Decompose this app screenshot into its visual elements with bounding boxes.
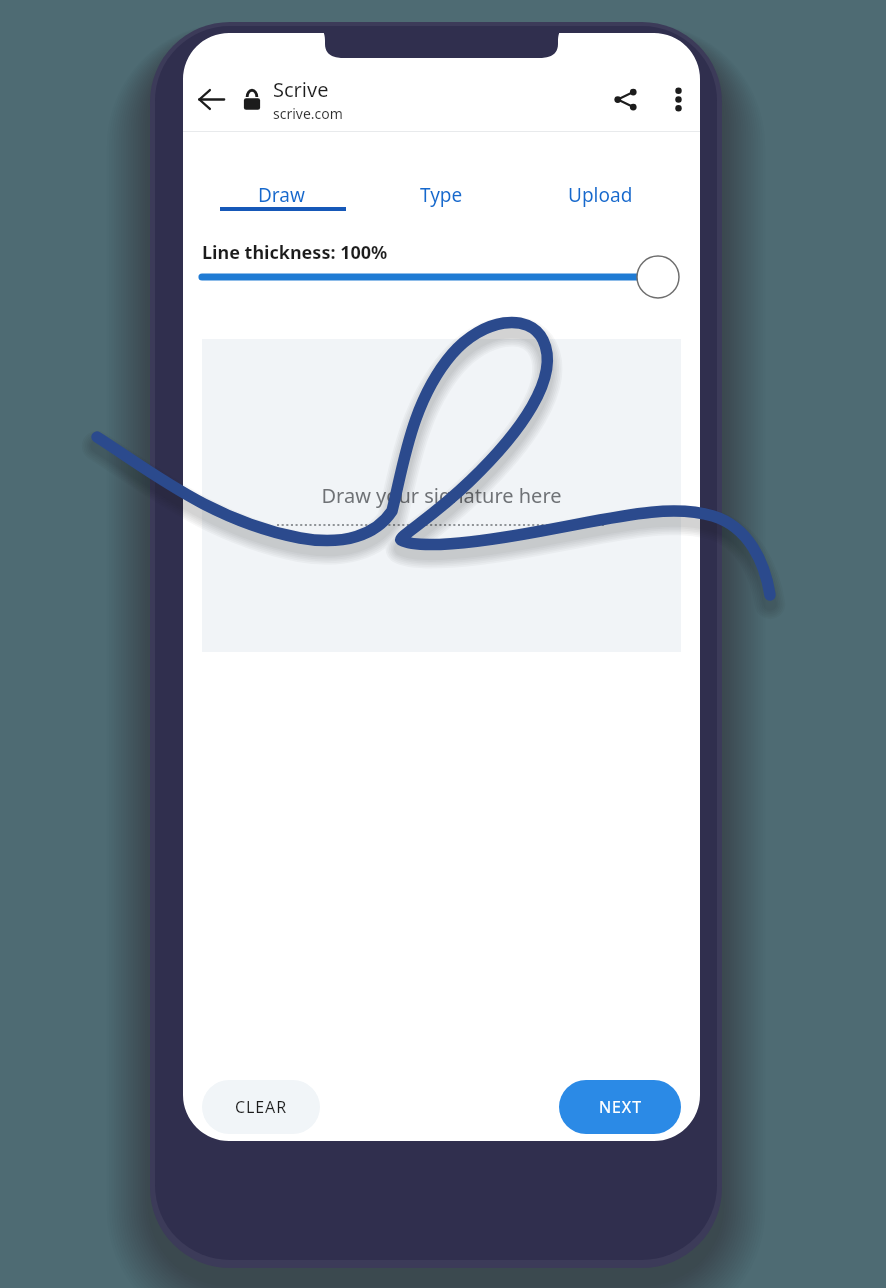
button[interactable]: Draw	[202, 172, 361, 218]
button[interactable]: Upload	[521, 172, 680, 218]
staticText: Upload	[568, 182, 633, 208]
staticText: CLEAR	[235, 1096, 288, 1118]
staticText: Scrive	[273, 76, 329, 103]
staticText: Draw	[258, 182, 305, 208]
button[interactable]: More options	[656, 77, 700, 121]
button[interactable]: Back	[183, 71, 239, 127]
button[interactable]: CLEAR	[202, 1080, 320, 1134]
button[interactable]: Share	[600, 74, 650, 124]
staticText: Type	[420, 182, 463, 208]
staticText: Draw your signature here	[321, 482, 562, 509]
staticText: scrive.com	[273, 104, 343, 123]
button[interactable]	[196, 256, 696, 298]
button[interactable]	[202, 339, 681, 652]
staticText: NEXT	[599, 1096, 642, 1118]
staticText: Line thickness: 100%	[202, 240, 388, 265]
button[interactable]: Type	[362, 172, 521, 218]
button[interactable]: NEXT	[559, 1080, 681, 1134]
